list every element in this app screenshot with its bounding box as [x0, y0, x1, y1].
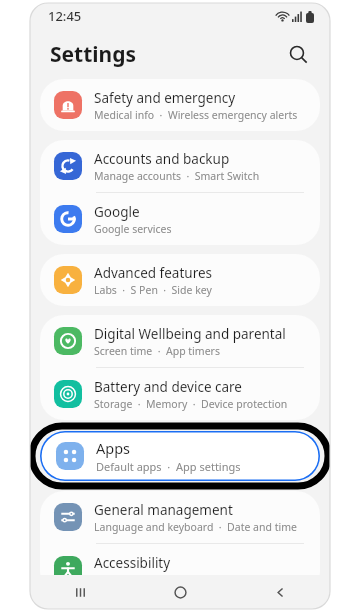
- staticText: Google services: [94, 222, 172, 236]
- staticText: Advanced features: [94, 264, 213, 282]
- staticText: 12:45: [48, 7, 82, 25]
- staticText: Safety and emergency: [94, 89, 236, 107]
- button[interactable]: Safety and emergency: [40, 79, 320, 131]
- button[interactable]: General management: [40, 491, 320, 543]
- staticText: Manage accounts · Smart Switch: [94, 169, 260, 183]
- button[interactable]: Apps: [40, 431, 320, 481]
- staticText: Settings: [50, 40, 137, 69]
- button[interactable]: Home: [130, 575, 230, 609]
- staticText: Accounts and backup: [94, 150, 230, 168]
- staticText: Storage · Memory · Device protection: [94, 397, 288, 411]
- button[interactable]: Google: [40, 193, 320, 245]
- button[interactable]: Digital Wellbeing and parental controls: [40, 315, 320, 367]
- button[interactable]: Battery and device care: [40, 368, 320, 420]
- staticText: Accessibility: [94, 554, 171, 572]
- staticText: Language and keyboard · Date and time: [94, 520, 297, 534]
- staticText: Screen time · App timers: [94, 344, 220, 358]
- button[interactable]: Accounts and backup: [40, 140, 320, 192]
- button[interactable]: Back: [230, 575, 330, 609]
- staticText: TalkBack · Mono audio · Assistant menu: [94, 573, 300, 587]
- button[interactable]: Accessibility: [40, 544, 320, 596]
- staticText: Google: [94, 203, 140, 221]
- staticText: Apps: [96, 438, 131, 458]
- staticText: Battery and device care: [94, 378, 242, 396]
- staticText: Digital Wellbeing and parental controls: [94, 325, 306, 343]
- staticText: Default apps · App settings: [96, 459, 241, 474]
- staticText: Labs · S Pen · Side key: [94, 283, 212, 297]
- button[interactable]: Search: [280, 36, 316, 72]
- staticText: Medical info · Wireless emergency alerts: [94, 108, 298, 122]
- button[interactable]: Recent apps: [30, 575, 130, 609]
- staticText: General management: [94, 501, 233, 519]
- button[interactable]: Advanced features: [40, 254, 320, 306]
